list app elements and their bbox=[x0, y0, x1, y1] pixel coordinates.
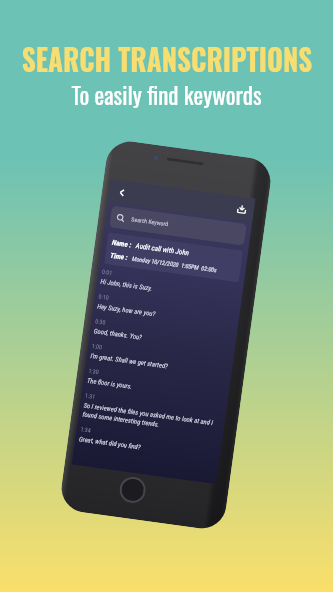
staticText: I'm great. Shall we get started? bbox=[90, 352, 169, 371]
button[interactable]: Home bbox=[120, 477, 145, 502]
staticText: The floor is yours. bbox=[86, 377, 133, 391]
staticText: Audit call with John bbox=[135, 241, 190, 256]
staticText: 0:01 bbox=[102, 268, 113, 276]
button[interactable]: Search Keyword bbox=[115, 206, 241, 245]
staticText: Good, thanks. You? bbox=[93, 327, 143, 342]
staticText: Hi John, this is Suzy. bbox=[100, 278, 154, 293]
staticText: 1:00 bbox=[91, 342, 103, 350]
staticText: 0:10 bbox=[98, 292, 110, 301]
staticText: Search Keyword bbox=[131, 216, 169, 228]
staticText: 1:30 bbox=[88, 367, 100, 375]
staticText: Name : bbox=[112, 238, 132, 248]
button[interactable]: Back bbox=[116, 187, 128, 198]
staticText: 1:31 bbox=[85, 392, 96, 400]
staticText: Hey Suzy, how are you? bbox=[97, 302, 156, 318]
staticText: Great, what did you find? bbox=[78, 435, 141, 451]
staticText: SEARCH TRANSCRIPTIONS bbox=[21, 37, 313, 81]
staticText: So I reviewed the files you asked me to … bbox=[82, 401, 221, 437]
staticText: Time : bbox=[110, 251, 129, 261]
button[interactable]: Download bbox=[236, 203, 247, 215]
staticText: To easily find keywords bbox=[71, 78, 262, 112]
staticText: Monday 10/12/2020 1:05PM 02:00s bbox=[132, 255, 218, 273]
staticText: 0:30 bbox=[95, 317, 107, 326]
staticText: 1:34 bbox=[80, 425, 92, 434]
